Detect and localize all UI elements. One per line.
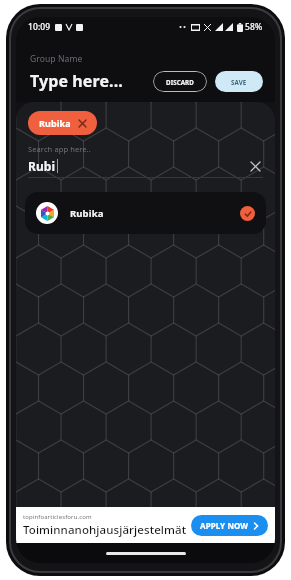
staticText: topinfoarticlesforu.com [23, 513, 92, 521]
staticText: Search app here.. [28, 144, 91, 154]
staticText: Rubika [39, 117, 71, 129]
button[interactable]: topinfoarticlesforu.com [16, 507, 275, 543]
button[interactable]: DISCARD [153, 71, 207, 92]
staticText: Type here... [30, 70, 123, 92]
button[interactable]: Clear search [247, 158, 263, 174]
staticText: SAVE [231, 78, 247, 86]
staticText: 58% [245, 21, 263, 33]
staticText: Group Name [30, 53, 83, 65]
staticText: APPLY NOW [200, 520, 249, 531]
staticText: DISCARD [166, 78, 194, 86]
button[interactable]: Rubika [28, 111, 97, 135]
staticText: Toiminnanohjausjärjestelmät [23, 522, 187, 538]
staticText: 10:09 [28, 21, 51, 33]
staticText: Rubika [70, 207, 104, 220]
staticText: Rubi [28, 158, 56, 174]
button[interactable]: SAVE [215, 71, 263, 92]
button[interactable]: Rubika [25, 192, 266, 234]
other: Selected [240, 206, 255, 221]
button[interactable]: APPLY NOW [191, 515, 268, 536]
